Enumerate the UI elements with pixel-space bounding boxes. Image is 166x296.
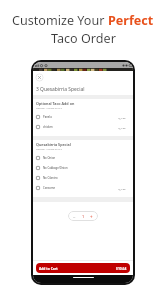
- staticText: +$1.00: [118, 126, 126, 129]
- staticText: No Cilantro: [43, 176, 130, 180]
- staticText: Taco Order: [51, 30, 116, 47]
- button[interactable]: Increase quantity: [87, 212, 96, 221]
- button[interactable]: No Onion: [33, 153, 133, 163]
- staticText: +: [90, 214, 93, 220]
- staticText: −: [73, 214, 76, 220]
- button[interactable]: Close: [35, 73, 44, 82]
- staticText: 3 Quesabirria Special: [36, 86, 85, 93]
- staticText: +$1.00: [118, 187, 126, 190]
- staticText: $10.64: [116, 266, 127, 270]
- button[interactable]: No Cilantro: [33, 173, 133, 183]
- staticText: No Onion: [43, 156, 130, 160]
- staticText: Optional · Choose up to 4: [36, 148, 63, 151]
- button[interactable]: Panela: [33, 112, 133, 122]
- staticText: Optional Taco Add on: [36, 101, 75, 106]
- staticText: Optional · Choose up to 4: [36, 107, 63, 110]
- staticText: Customize Your: [12, 12, 108, 29]
- staticText: No Cabbage/Onion: [43, 166, 130, 170]
- staticText: Add to Cart: [39, 266, 58, 270]
- staticText: Perfect: [108, 12, 154, 29]
- button[interactable]: No Cabbage/Onion: [33, 163, 133, 173]
- staticText: Consome: [43, 186, 118, 190]
- staticText: chicken: [43, 125, 118, 129]
- staticText: +$1.00: [118, 116, 126, 119]
- button[interactable]: Add to Cart: [36, 263, 130, 273]
- staticText: 1: [82, 214, 85, 219]
- staticText: Quesabirria Special: [36, 142, 71, 147]
- button[interactable]: Consome: [33, 183, 133, 193]
- button[interactable]: chicken: [33, 122, 133, 132]
- staticText: Panela: [43, 115, 118, 119]
- button[interactable]: Decrease quantity: [70, 212, 79, 221]
